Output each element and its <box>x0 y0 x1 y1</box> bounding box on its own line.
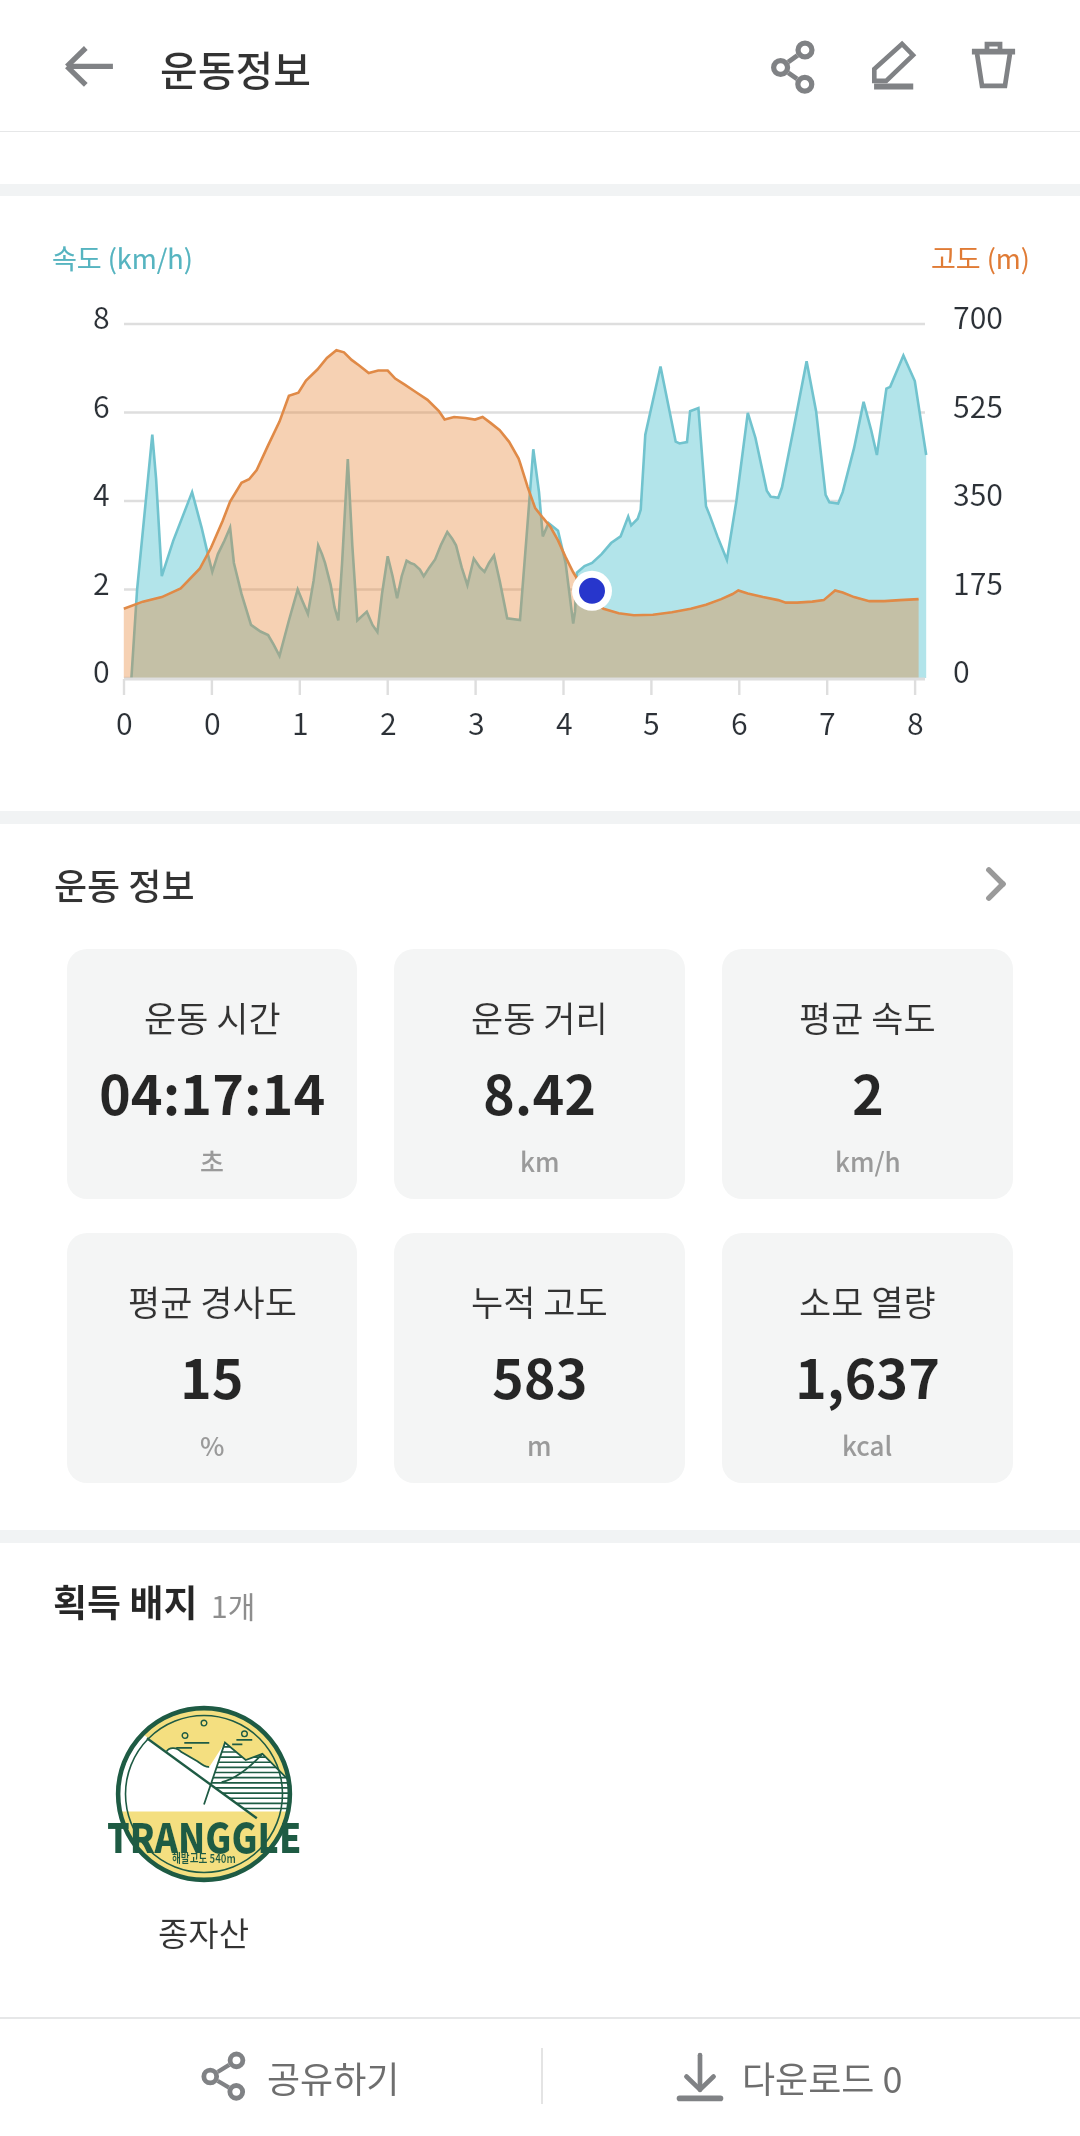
staticText: 다운로드 0 <box>742 2051 903 2103</box>
staticText: 누적 고도 <box>471 1275 608 1326</box>
staticText: 8 <box>93 294 110 337</box>
button[interactable]: 운동 시간 <box>67 949 357 1199</box>
staticText: 04:17:14 <box>99 1052 326 1130</box>
button[interactable]: 공유하기 <box>0 2017 540 2136</box>
staticText: 8 <box>907 700 924 743</box>
staticText: m <box>527 1426 552 1464</box>
staticText: 2 <box>380 700 397 743</box>
staticText: 2 <box>852 1052 884 1130</box>
staticText: 583 <box>492 1336 588 1414</box>
staticText: 공유하기 <box>267 2051 400 2103</box>
staticText: 운동 정보 <box>54 858 195 910</box>
staticText: 속도 (km/h) <box>52 238 193 277</box>
staticText: 종자산 <box>158 1908 250 1956</box>
staticText: 1개 <box>211 1583 256 1626</box>
staticText: 0 <box>204 700 221 743</box>
button[interactable]: 운동 거리 <box>394 949 685 1199</box>
staticText: 2 <box>93 560 110 603</box>
staticText: 평균 속도 <box>799 991 936 1042</box>
staticText: 5 <box>643 700 660 743</box>
staticText: TRANGGLE <box>107 1807 302 1865</box>
staticText: km <box>520 1142 560 1180</box>
staticText: 0 <box>953 648 970 691</box>
staticText: 4 <box>93 471 110 514</box>
staticText: 획득 배지 <box>53 1574 198 1628</box>
staticText: 0 <box>93 648 110 691</box>
staticText: 7 <box>819 700 836 743</box>
button[interactable]: TRANGGLE <box>76 1706 332 1956</box>
staticText: 15 <box>180 1336 244 1414</box>
button[interactable]: Delete <box>927 0 1059 132</box>
staticText: 운동 거리 <box>471 991 608 1042</box>
button[interactable]: 평균 경사도 <box>67 1233 357 1483</box>
button[interactable]: 다운로드 0 <box>540 2017 1080 2136</box>
button[interactable]: 누적 고도 <box>394 1233 685 1483</box>
staticText: 소모 열량 <box>799 1275 936 1326</box>
staticText: 8.42 <box>483 1052 597 1130</box>
staticText: 4 <box>556 700 573 743</box>
button[interactable]: Share <box>727 0 859 132</box>
staticText: 0 <box>116 700 133 743</box>
button[interactable]: 소모 열량 <box>722 1233 1013 1483</box>
staticText: 6 <box>93 383 110 426</box>
button[interactable]: Back <box>22 0 154 132</box>
staticText: 초 <box>200 1142 224 1180</box>
staticText: km/h <box>835 1142 901 1180</box>
staticText: 3 <box>468 700 485 743</box>
staticText: % <box>200 1426 225 1464</box>
button[interactable]: 운동 정보 <box>0 824 1080 944</box>
staticText: 평균 경사도 <box>128 1275 297 1326</box>
staticText: 175 <box>953 560 1003 603</box>
staticText: 700 <box>953 294 1003 337</box>
staticText: 525 <box>953 383 1003 426</box>
staticText: 고도 (m) <box>931 238 1030 277</box>
staticText: kcal <box>842 1426 893 1464</box>
staticText: 350 <box>953 471 1003 514</box>
staticText: 운동정보 <box>160 38 311 97</box>
staticText: 운동 시간 <box>144 991 281 1042</box>
staticText: 해발고도 540m <box>172 1849 236 1866</box>
staticText: 6 <box>731 700 748 743</box>
button[interactable]: 평균 속도 <box>722 949 1013 1199</box>
staticText: 1 <box>292 700 309 743</box>
button[interactable]: Edit <box>827 0 959 132</box>
staticText: 1,637 <box>795 1336 940 1414</box>
